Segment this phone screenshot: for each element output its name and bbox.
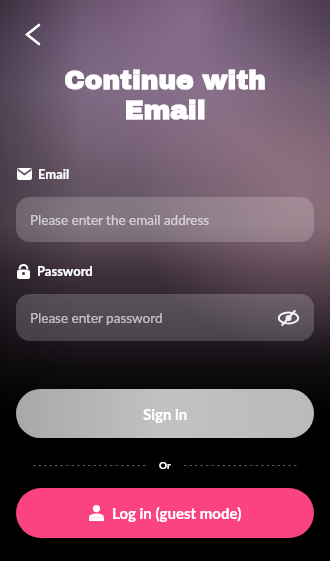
staticText: Please enter password (30, 310, 163, 326)
button[interactable]: Please enter password (16, 294, 314, 341)
staticText: Password (37, 263, 93, 279)
staticText: Sign in (143, 405, 188, 423)
button[interactable]: Sign in (16, 389, 314, 438)
staticText: Continue with Email (0, 66, 330, 125)
button[interactable]: Please enter the email address (16, 197, 314, 242)
staticText: Or (159, 459, 171, 471)
button[interactable]: Log in (guest mode) (16, 488, 314, 538)
staticText: Log in (guest mode) (112, 504, 242, 522)
button[interactable] (14, 15, 52, 53)
staticText: Please enter the email address (30, 212, 210, 228)
staticText: Email (38, 166, 70, 182)
